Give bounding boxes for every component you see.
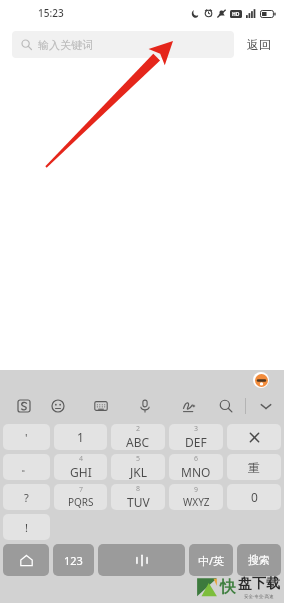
- staticText: PQRS: [68, 495, 94, 509]
- button[interactable]: 9: [169, 484, 223, 510]
- button[interactable]: Home: [3, 544, 49, 576]
- staticText: 123: [64, 553, 83, 568]
- button[interactable]: ': [3, 424, 50, 450]
- staticText: 输入关键词: [38, 38, 93, 52]
- staticText: 6: [194, 454, 199, 464]
- button[interactable]: Voice input: [133, 392, 157, 420]
- button[interactable]: Space: [98, 544, 185, 576]
- staticText: 0: [251, 489, 258, 505]
- button[interactable]: 7: [54, 484, 107, 510]
- button[interactable]: Emoji: [46, 392, 70, 420]
- staticText: 4: [79, 454, 84, 464]
- staticText: GHI: [70, 464, 92, 480]
- button[interactable]: ?: [3, 484, 50, 510]
- button[interactable]: Account: [253, 372, 269, 388]
- staticText: ': [25, 430, 28, 445]
- staticText: MNO: [181, 464, 211, 480]
- button[interactable]: 123: [53, 544, 94, 576]
- button[interactable]: 5: [111, 454, 165, 480]
- staticText: TUV: [127, 494, 150, 510]
- staticText: 5: [136, 454, 141, 464]
- button[interactable]: 搜索: [237, 544, 281, 576]
- button[interactable]: 返回: [234, 32, 272, 57]
- staticText: 中/英: [198, 553, 225, 568]
- staticText: 15:23: [38, 6, 64, 20]
- staticText: !: [25, 520, 28, 535]
- staticText: HD: [232, 11, 240, 18]
- button[interactable]: Hide keyboard: [254, 392, 278, 420]
- staticText: 搜索: [248, 553, 270, 567]
- staticText: 快: [220, 577, 236, 597]
- staticText: 。: [21, 460, 32, 474]
- staticText: 8: [136, 484, 141, 494]
- staticText: 2: [136, 424, 141, 434]
- staticText: 9: [194, 485, 199, 495]
- button[interactable]: 3: [169, 424, 223, 450]
- staticText: WXYZ: [183, 495, 210, 509]
- staticText: ?: [24, 490, 29, 505]
- staticText: 1: [77, 429, 84, 445]
- button[interactable]: 0: [227, 484, 281, 510]
- staticText: 重: [248, 460, 260, 475]
- button[interactable]: 8: [111, 484, 165, 510]
- staticText: JKL: [130, 464, 147, 480]
- button[interactable]: 6: [169, 454, 223, 480]
- button[interactable]: 中/英: [189, 544, 233, 576]
- button[interactable]: 。: [3, 454, 50, 480]
- staticText: DEF: [185, 434, 207, 450]
- button[interactable]: Sogou input: [12, 392, 36, 420]
- button[interactable]: 输入关键词: [12, 31, 234, 58]
- button[interactable]: 重: [227, 454, 281, 480]
- button[interactable]: 2: [111, 424, 165, 450]
- staticText: 3: [194, 424, 199, 434]
- button[interactable]: !: [3, 514, 50, 540]
- button[interactable]: 4: [54, 454, 107, 480]
- button[interactable]: Keyboard layout: [89, 392, 113, 420]
- button[interactable]: 1: [54, 424, 107, 450]
- staticText: 安全·专业·高速: [244, 593, 274, 599]
- button[interactable]: Search: [214, 392, 238, 420]
- button[interactable]: Handwriting: [177, 392, 201, 420]
- staticText: 7: [79, 485, 84, 495]
- staticText: 返回: [247, 37, 271, 52]
- staticText: 盘下载: [238, 575, 280, 593]
- staticText: ABC: [126, 434, 150, 450]
- button[interactable]: Delete: [227, 424, 281, 450]
